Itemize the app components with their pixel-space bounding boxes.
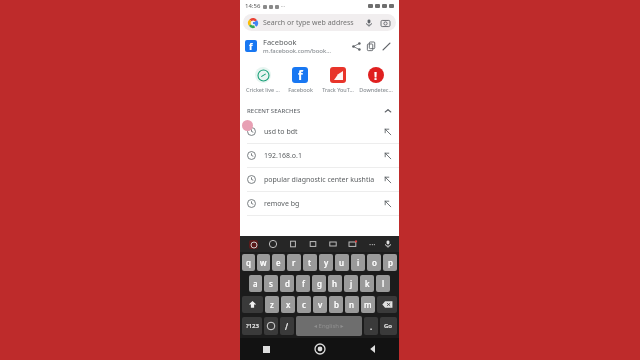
button[interactable]: Keyboard tool 6 [343, 236, 363, 252]
button[interactable]: g [312, 275, 326, 292]
staticText: Track YouT… [322, 86, 354, 93]
staticText: ! [374, 68, 378, 83]
button[interactable]: Shift [242, 296, 263, 313]
button[interactable]: 192.168.o.1 [240, 144, 399, 167]
button[interactable]: l [376, 275, 390, 292]
button[interactable]: n [345, 296, 359, 313]
staticText: a [253, 278, 258, 289]
button[interactable]: a [249, 275, 262, 292]
button[interactable]: Share [349, 39, 364, 54]
staticText: 192.168.o.1 [264, 151, 380, 161]
button[interactable]: c [297, 296, 311, 313]
button[interactable]: RECENT SEARCHES [240, 102, 399, 120]
staticText: . [370, 321, 373, 332]
button[interactable]: Track YouT… [319, 62, 357, 102]
staticText: usd to bdt [264, 127, 380, 137]
staticText: m.facebook.com/book… [263, 47, 331, 55]
button[interactable]: e [272, 254, 285, 271]
staticText: Facebook [288, 86, 313, 93]
staticText: h [332, 278, 338, 289]
button[interactable]: ! [357, 62, 395, 102]
staticText: Go [384, 322, 393, 330]
button[interactable]: / [280, 317, 294, 335]
button[interactable]: p [383, 254, 397, 271]
button[interactable]: Keyboard tool 5 [323, 236, 343, 252]
button[interactable]: Keyboard tool 3 [283, 236, 303, 252]
staticText: Cricket live … [246, 86, 280, 93]
staticText: d [285, 278, 290, 289]
button[interactable]: Keyboard tool 1 [244, 236, 263, 252]
button[interactable]: ◂ English ▸ [296, 316, 362, 336]
button[interactable]: Recents [240, 338, 293, 360]
button[interactable]: i [351, 254, 365, 271]
button[interactable]: Keyboard tool 4 [303, 236, 323, 252]
staticText: r [292, 257, 296, 268]
button[interactable]: h [328, 275, 342, 292]
button[interactable]: k [360, 275, 374, 292]
staticText: p [388, 257, 393, 268]
staticText: / [285, 321, 289, 332]
button[interactable]: Lens search [379, 17, 391, 29]
button[interactable]: r [287, 254, 301, 271]
button[interactable]: Keyboard tool 2 [263, 236, 283, 252]
staticText: f [298, 67, 303, 83]
button[interactable]: Cricket live … [244, 62, 281, 102]
button[interactable]: Copy [364, 39, 379, 54]
staticText: Facebook [263, 37, 297, 47]
button[interactable]: f [296, 275, 310, 292]
button[interactable]: ··· [363, 236, 381, 252]
button[interactable]: j [344, 275, 358, 292]
button[interactable]: Voice search [363, 17, 375, 29]
button[interactable]: Backspace [377, 296, 397, 313]
staticText: RECENT SEARCHES [247, 107, 301, 115]
staticText: n [349, 299, 355, 310]
button[interactable]: u [335, 254, 349, 271]
staticText: popular diagnostic center kushtia [264, 175, 380, 185]
staticText: k [365, 278, 370, 289]
button[interactable]: m [361, 296, 375, 313]
button[interactable]: ?123 [242, 317, 262, 335]
button[interactable]: Go [380, 317, 397, 335]
button[interactable]: remove bg [240, 192, 399, 215]
button[interactable]: w [257, 254, 270, 271]
button[interactable]: b [329, 296, 343, 313]
button[interactable]: f [240, 33, 399, 59]
staticText: v [318, 299, 323, 310]
button[interactable]: o [367, 254, 381, 271]
staticText: ◂ English ▸ [314, 322, 344, 330]
staticText: c [302, 299, 306, 310]
staticText: x [286, 299, 291, 310]
staticText: z [270, 299, 274, 310]
staticText: s [269, 278, 273, 289]
staticText: ?123 [246, 322, 259, 330]
button[interactable]: Emoji [264, 317, 278, 335]
button[interactable]: popular diagnostic center kushtia [240, 168, 399, 191]
staticText: ··· [369, 239, 376, 250]
button[interactable]: v [313, 296, 327, 313]
button[interactable]: s [264, 275, 278, 292]
staticText: m [364, 299, 372, 310]
staticText: Downdetec… [359, 86, 393, 93]
staticText: j [350, 278, 353, 289]
staticText: g [317, 278, 322, 289]
button[interactable]: x [281, 296, 295, 313]
button[interactable]: Search or type web address [243, 14, 396, 31]
staticText: w [260, 257, 267, 268]
button[interactable]: . [364, 317, 378, 335]
button[interactable]: usd to bdt [240, 120, 399, 143]
button[interactable]: y [319, 254, 333, 271]
button[interactable]: t [303, 254, 317, 271]
staticText: ··· [281, 3, 286, 10]
button[interactable]: q [242, 254, 255, 271]
staticText: q [246, 257, 251, 268]
staticText: b [334, 299, 339, 310]
button[interactable]: z [265, 296, 279, 313]
button[interactable]: d [280, 275, 294, 292]
staticText: e [276, 257, 281, 268]
button[interactable]: Edit [379, 39, 394, 54]
button[interactable]: Back [346, 338, 399, 360]
button[interactable]: Home [293, 338, 346, 360]
button[interactable]: Voice input [381, 236, 395, 252]
staticText: o [372, 257, 377, 268]
button[interactable]: f [281, 62, 319, 102]
